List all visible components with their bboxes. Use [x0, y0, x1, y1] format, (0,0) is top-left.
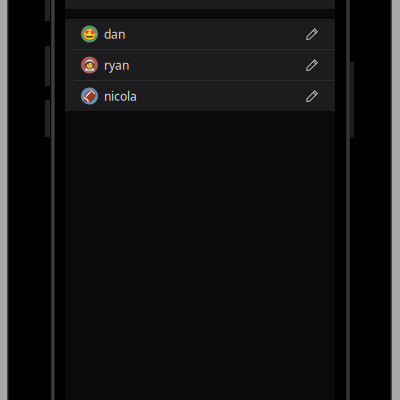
button[interactable]: 🤩: [65, 19, 335, 49]
staticText: nicola: [104, 88, 137, 104]
staticText: ryan: [104, 57, 129, 73]
staticText: 🧑‍🚀: [83, 59, 96, 71]
staticText: 🤩: [83, 28, 96, 40]
button[interactable]: 🏈: [65, 81, 335, 111]
staticText: dan: [104, 26, 125, 42]
staticText: 🏈: [83, 90, 96, 102]
button[interactable]: 🧑‍🚀: [65, 50, 335, 80]
